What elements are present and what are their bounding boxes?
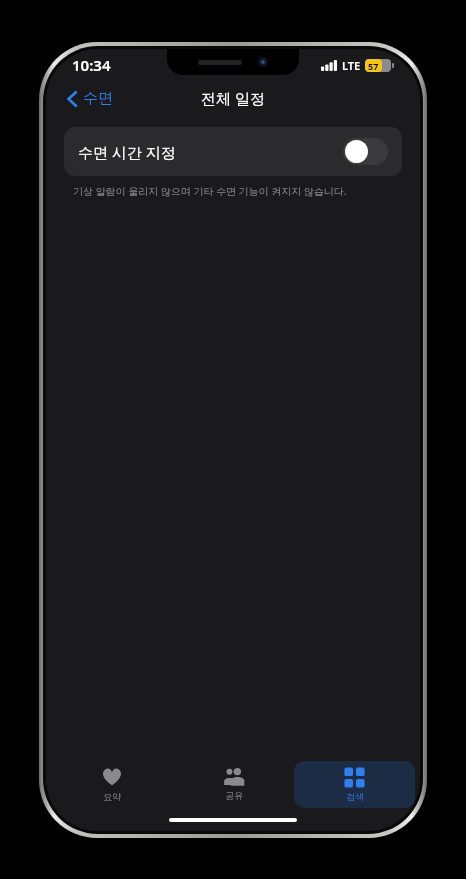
- button[interactable]: 수면 시간 지정 켜기: [343, 138, 388, 165]
- button[interactable]: 공유: [173, 761, 294, 807]
- staticText: 검색: [346, 791, 364, 802]
- staticText: 수면 시간 지정: [78, 142, 343, 162]
- staticText: 요약: [103, 791, 121, 802]
- staticText: LTE: [342, 58, 361, 73]
- staticText: 공유: [225, 790, 243, 801]
- staticText: 10:34: [72, 55, 111, 75]
- staticText: 기상 알람이 울리지 않으며 기타 수면 기능이 켜지지 않습니다.: [73, 184, 347, 198]
- button[interactable]: 검색: [294, 761, 415, 808]
- staticText: 전체 일정: [201, 88, 265, 108]
- button[interactable]: 요약: [51, 760, 173, 808]
- staticText: 57: [368, 60, 379, 72]
- button[interactable]: 수면: [62, 84, 118, 113]
- staticText: 수면: [83, 89, 113, 108]
- button[interactable]: 수면 시간 지정: [64, 127, 402, 176]
